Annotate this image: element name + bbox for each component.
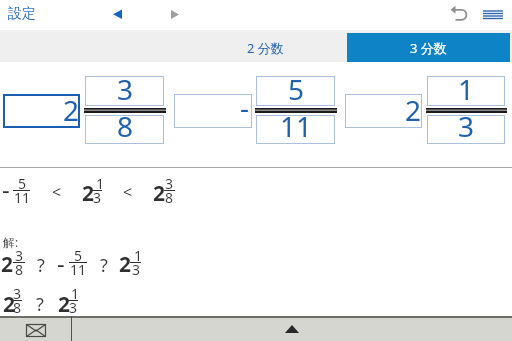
- staticText: ?: [37, 253, 45, 278]
- staticText: 3: [15, 246, 24, 265]
- staticText: 11: [280, 107, 313, 145]
- staticText: 2: [405, 91, 422, 129]
- staticText: -: [2, 172, 10, 205]
- staticText: 1: [71, 284, 80, 303]
- staticText: 1: [458, 70, 475, 108]
- staticText: 3 分数: [410, 39, 447, 57]
- button[interactable]: [481, 6, 507, 26]
- button[interactable]: [18, 319, 54, 341]
- staticText: 1: [96, 174, 105, 193]
- button[interactable]: 2 分数: [184, 33, 347, 62]
- staticText: 3: [69, 298, 78, 317]
- button[interactable]: [85, 115, 164, 144]
- button[interactable]: [72, 316, 512, 341]
- staticText: <: [52, 181, 62, 203]
- staticText: 1: [134, 246, 143, 265]
- staticText: 設定: [8, 5, 36, 23]
- staticText: 11: [14, 188, 31, 207]
- staticText: 2: [58, 290, 71, 319]
- staticText: 2: [153, 179, 166, 208]
- staticText: 2: [3, 290, 16, 319]
- staticText: -: [57, 246, 65, 279]
- staticText: 8: [117, 107, 134, 145]
- button[interactable]: [3, 94, 80, 128]
- button[interactable]: [163, 4, 187, 26]
- staticText: 解:: [3, 234, 19, 250]
- button[interactable]: 設定: [8, 5, 36, 23]
- staticText: 3: [132, 260, 141, 279]
- staticText: 2: [82, 179, 95, 208]
- staticText: ?: [36, 292, 44, 317]
- staticText: 2: [1, 250, 14, 279]
- button[interactable]: [427, 76, 505, 106]
- button[interactable]: [256, 76, 335, 106]
- staticText: ?: [100, 253, 108, 278]
- button[interactable]: 3 分数: [347, 33, 510, 62]
- staticText: 3: [93, 188, 102, 207]
- staticText: 2: [119, 250, 132, 279]
- staticText: 5: [18, 174, 27, 193]
- staticText: 11: [70, 260, 87, 279]
- staticText: 8: [13, 298, 22, 317]
- staticText: 8: [165, 188, 174, 207]
- button[interactable]: [256, 115, 335, 144]
- button[interactable]: [427, 115, 505, 144]
- staticText: 5: [74, 246, 83, 265]
- button[interactable]: [345, 94, 422, 128]
- button[interactable]: [85, 76, 164, 106]
- button[interactable]: [446, 2, 472, 28]
- staticText: 2: [63, 91, 80, 129]
- staticText: 3: [165, 174, 174, 193]
- button[interactable]: [105, 4, 129, 26]
- staticText: <: [123, 181, 133, 203]
- staticText: 2 分数: [247, 39, 284, 57]
- staticText: -: [240, 88, 250, 126]
- staticText: 3: [458, 107, 475, 145]
- staticText: 8: [15, 260, 24, 279]
- staticText: 3: [13, 284, 22, 303]
- staticText: 3: [117, 70, 134, 108]
- button[interactable]: [174, 94, 252, 128]
- staticText: 5: [288, 70, 305, 108]
